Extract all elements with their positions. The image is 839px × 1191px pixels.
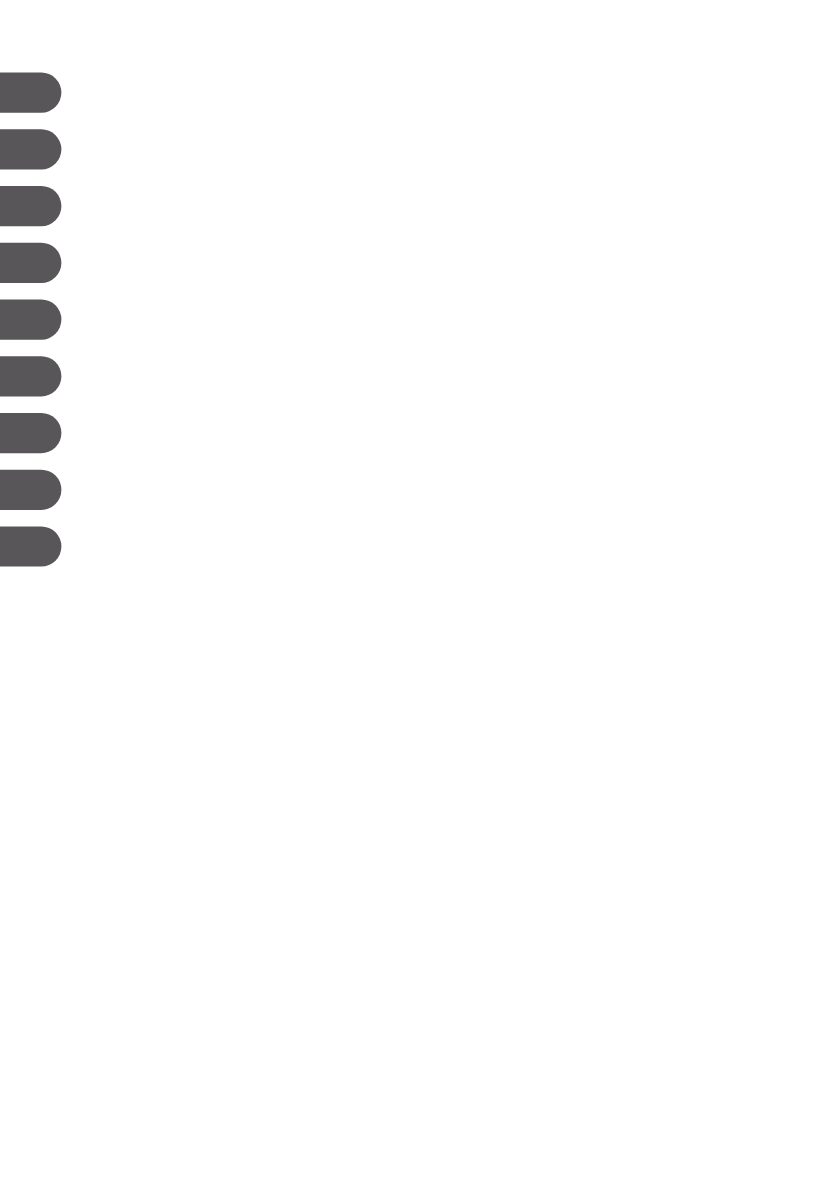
- button[interactable]: List item 3: [0, 186, 61, 226]
- button[interactable]: List item 8: [0, 470, 61, 510]
- button[interactable]: List item 9: [0, 526, 61, 566]
- button[interactable]: List item 5: [0, 299, 61, 339]
- button[interactable]: List item 7: [0, 413, 61, 453]
- button[interactable]: List item 6: [0, 356, 61, 396]
- button[interactable]: List item 4: [0, 243, 61, 283]
- button[interactable]: List item 2: [0, 129, 61, 169]
- button[interactable]: List item 1: [0, 73, 61, 113]
